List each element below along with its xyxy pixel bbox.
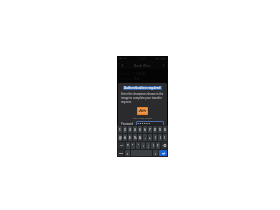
staticText: ' xyxy=(138,144,139,148)
button[interactable]: * xyxy=(126,142,130,149)
staticText: ( xyxy=(155,136,156,140)
staticText: 3 xyxy=(129,128,131,132)
staticText: ; xyxy=(148,144,149,148)
staticText: EUR xyxy=(134,77,140,81)
staticText: Bank Wire xyxy=(134,63,151,68)
button[interactable]: More options xyxy=(160,62,166,68)
button[interactable]: Authenticate xyxy=(138,129,164,135)
staticText: * xyxy=(127,144,129,148)
button[interactable]: Enter xyxy=(159,150,167,156)
staticText: Beneficiary xyxy=(119,81,133,86)
button[interactable]: # xyxy=(123,134,127,141)
staticText: Authentication required xyxy=(124,86,161,90)
button[interactable]: " xyxy=(131,142,135,149)
staticText: 5 xyxy=(139,128,141,132)
staticText: 7 xyxy=(149,128,151,132)
button[interactable]: Period xyxy=(153,150,158,156)
staticText: : xyxy=(143,144,144,148)
staticText: 12:45 xyxy=(138,57,146,61)
button[interactable]: $ xyxy=(128,134,132,141)
staticText: 8 xyxy=(154,128,156,132)
button[interactable]: Get a new image xyxy=(132,116,153,119)
staticText: / xyxy=(164,136,166,140)
button[interactable]: 8 xyxy=(153,126,157,133)
staticText: % xyxy=(134,136,137,140)
button[interactable]: 9 xyxy=(158,126,162,133)
button[interactable]: 7 xyxy=(148,126,152,133)
button[interactable]: ? xyxy=(156,142,160,149)
staticText: Acme International Ltd xyxy=(134,82,165,86)
button[interactable]: Backspace xyxy=(161,142,167,149)
staticText: ! xyxy=(153,144,154,148)
staticText: " xyxy=(132,144,134,148)
staticText: $ xyxy=(129,136,131,140)
button[interactable]: 4 xyxy=(133,126,137,133)
staticText: Get a new image xyxy=(133,116,152,119)
button[interactable]: - xyxy=(143,134,147,141)
button[interactable]: & xyxy=(138,134,142,141)
button[interactable]: Beneficiary xyxy=(119,81,166,86)
staticText: 1,250.00 xyxy=(134,72,146,76)
button[interactable]: : xyxy=(141,142,145,149)
staticText: Cancel xyxy=(124,130,133,134)
button[interactable]: 3 xyxy=(128,126,132,133)
button[interactable]: @ xyxy=(118,134,122,141)
button[interactable]: / xyxy=(163,134,167,141)
button[interactable]: 6 xyxy=(143,126,147,133)
button[interactable]: ' xyxy=(136,142,140,149)
staticText: IBAN xyxy=(119,87,126,91)
button[interactable]: ) xyxy=(158,134,162,141)
staticText: & xyxy=(139,136,142,140)
button[interactable]: ( xyxy=(153,134,157,141)
button[interactable]: Cancel xyxy=(121,129,136,135)
staticText: DE89 3704 0044 0532 xyxy=(134,87,163,91)
button[interactable]: 1 xyxy=(118,126,122,133)
staticText: - xyxy=(145,136,146,140)
staticText: 6 xyxy=(144,128,146,132)
button[interactable]: 2 xyxy=(123,126,127,133)
staticText: # xyxy=(124,136,126,140)
button[interactable]: 5 xyxy=(138,126,142,133)
staticText: 1 xyxy=(119,128,121,132)
staticText: 2 xyxy=(124,128,126,132)
button[interactable]: IBAN xyxy=(119,86,166,91)
button[interactable]: ABC xyxy=(118,150,124,156)
staticText: Password xyxy=(121,122,134,126)
button[interactable]: ! xyxy=(151,142,155,149)
staticText: ) xyxy=(160,136,161,140)
staticText: 4 xyxy=(134,128,136,132)
button[interactable]: 0 xyxy=(163,126,167,133)
button[interactable]: =\< xyxy=(118,142,125,149)
button[interactable]: Back xyxy=(119,62,125,68)
staticText: 0 xyxy=(164,128,166,132)
staticText: 9 xyxy=(159,128,161,132)
button[interactable] xyxy=(136,121,164,126)
button[interactable]: ; xyxy=(146,142,150,149)
staticText: Enter the characters shown in the image … xyxy=(121,92,164,104)
staticText: + xyxy=(149,136,151,140)
button[interactable]: + xyxy=(148,134,152,141)
staticText: Authenticate xyxy=(142,130,160,134)
staticText: ? xyxy=(157,144,159,148)
button[interactable]: % xyxy=(133,134,137,141)
staticText: ABC xyxy=(119,152,124,155)
staticText: @ xyxy=(119,136,122,140)
staticText: =\< xyxy=(120,144,124,147)
button[interactable]: Comma xyxy=(125,150,130,156)
staticText: Confirm xyxy=(119,93,130,97)
